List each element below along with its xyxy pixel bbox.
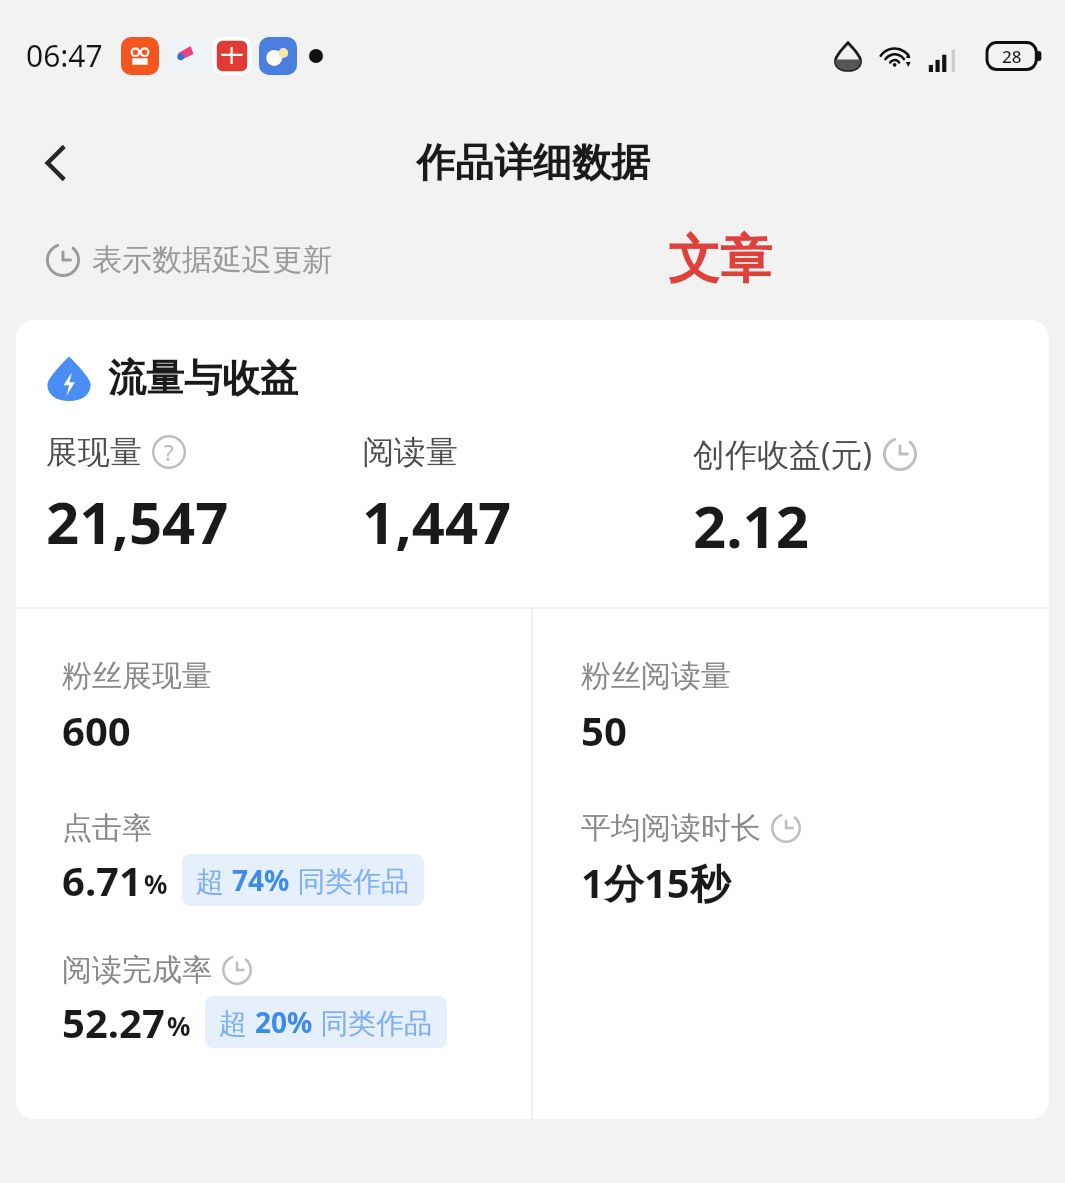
staticText: 同类作品	[313, 1003, 433, 1041]
staticText: 展现量	[46, 432, 142, 472]
staticText: 1分15秒	[581, 855, 730, 910]
button[interactable]: 超	[182, 854, 424, 906]
staticText: 作品详细数据	[416, 138, 650, 187]
staticText: 600	[62, 703, 131, 757]
staticText: 1,447	[362, 482, 512, 561]
staticText: 表示数据延迟更新	[92, 241, 332, 279]
staticText: 创作收益(元)	[693, 432, 873, 476]
button[interactable]: 超	[205, 996, 447, 1048]
staticText: ?	[164, 437, 174, 467]
staticText: 文章	[668, 227, 772, 293]
staticText: 超	[219, 1003, 255, 1041]
staticText: 粉丝阅读量	[581, 657, 731, 695]
staticText: 阅读完成率	[62, 951, 212, 989]
staticText: %	[144, 866, 168, 901]
staticText: 流量与收益	[108, 354, 298, 402]
staticText: 超	[196, 861, 232, 899]
staticText: 52.27	[62, 995, 165, 1049]
staticText: %	[167, 1008, 191, 1043]
staticText: 20%	[255, 1003, 313, 1041]
staticText: 06:47	[26, 35, 103, 76]
button[interactable]: Back	[22, 129, 90, 197]
staticText: 2.12	[693, 486, 809, 565]
button[interactable]: 流量与收益	[46, 354, 1049, 402]
staticText: 6.71	[62, 853, 142, 907]
staticText: 点击率	[62, 809, 152, 847]
staticText: 74%	[232, 861, 290, 899]
staticText: 21,547	[46, 482, 229, 561]
staticText: 同类作品	[290, 861, 410, 899]
staticText: 阅读量	[362, 432, 458, 472]
staticText: 平均阅读时长	[581, 809, 761, 847]
staticText: 28	[1002, 45, 1022, 68]
staticText: 50	[581, 703, 627, 757]
staticText: 粉丝展现量	[62, 657, 212, 695]
